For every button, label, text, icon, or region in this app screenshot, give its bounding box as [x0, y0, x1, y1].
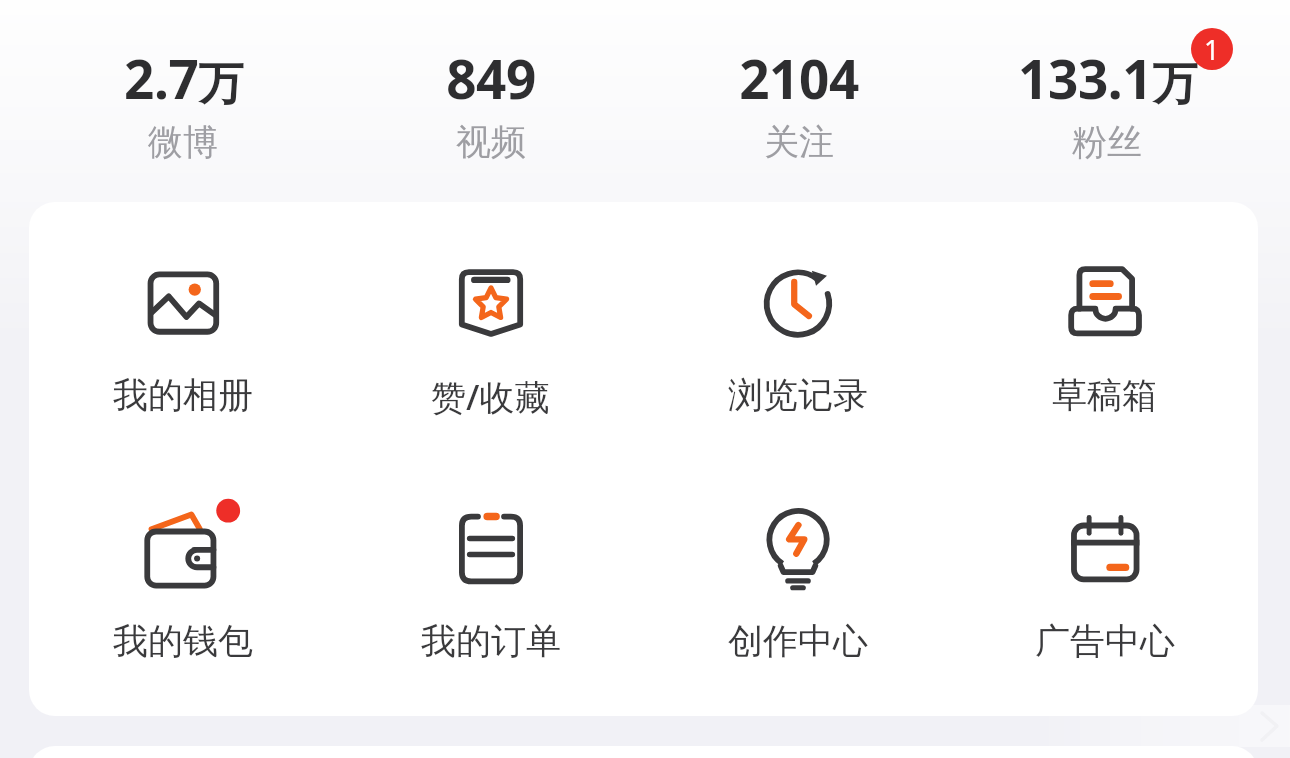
staticText: 849 [446, 42, 536, 114]
staticText: 微博 [148, 120, 218, 164]
staticText: 我的钱包 [113, 619, 253, 663]
staticText: 广告中心 [1035, 619, 1175, 663]
button[interactable]: 2.7万 [29, 42, 337, 164]
button[interactable]: 浏览记录 [644, 258, 951, 417]
button[interactable]: 草稿箱 [951, 258, 1258, 417]
staticText: 133.1万 [1018, 42, 1197, 114]
staticText: 2104 [739, 42, 859, 114]
button[interactable]: 1 new follower [1191, 28, 1233, 70]
staticText: 我的订单 [421, 619, 561, 663]
staticText: 视频 [456, 120, 526, 164]
button[interactable]: 我的相册 [29, 258, 337, 417]
staticText: 2.7万 [124, 42, 243, 114]
button[interactable]: 我的订单 [337, 504, 644, 663]
staticText: 粉丝 [1072, 120, 1142, 164]
staticText: 1 [1204, 31, 1220, 68]
button[interactable]: 我的钱包 [29, 504, 337, 663]
staticText: 我的相册 [113, 373, 253, 417]
button[interactable]: 849 [337, 42, 645, 164]
staticText: 关注 [764, 120, 834, 164]
button[interactable]: 133.1万 [953, 42, 1261, 164]
button[interactable]: 广告中心 [951, 504, 1258, 663]
button[interactable]: 赞/收藏 [337, 258, 644, 421]
staticText: 创作中心 [728, 619, 868, 663]
staticText: 草稿箱 [1052, 373, 1157, 417]
button[interactable]: 2104 [645, 42, 953, 164]
staticText: 浏览记录 [728, 373, 868, 417]
staticText: 赞/收藏 [431, 373, 550, 421]
button[interactable]: 创作中心 [644, 504, 951, 663]
